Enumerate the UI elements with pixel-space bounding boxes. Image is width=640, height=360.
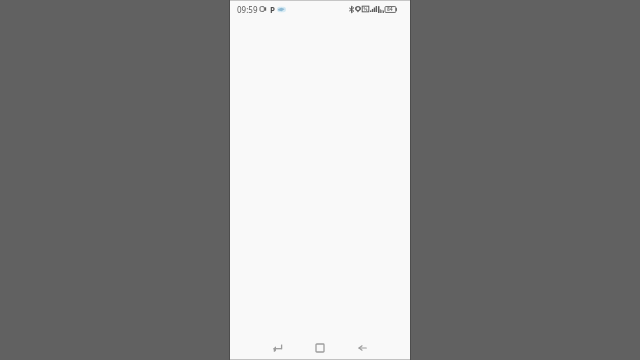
staticText: 09:59 — [237, 4, 258, 15]
staticText: 84 — [387, 6, 393, 13]
button[interactable]: Recent apps — [266, 336, 290, 360]
staticText: P — [270, 4, 275, 15]
button[interactable]: Home — [308, 336, 332, 360]
button[interactable]: Back — [350, 336, 374, 360]
